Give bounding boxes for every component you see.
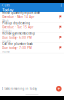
button[interactable]: Add task [56,86,62,92]
button[interactable]: Renew gym membership [0,33,64,43]
staticText: 4 tasks remaining in Today [2,87,37,90]
staticText: Due today · 7:30 PM [2,46,31,50]
staticText: Due today · 6:00 PM [2,36,31,39]
staticText: Pick up dry cleaning [2,21,30,25]
staticText: Home [2,50,10,54]
staticText: Overdue · Mon 14 Apr [2,15,34,19]
staticText: Finish quarterly report draft [2,11,40,15]
button[interactable]: Finish quarterly report draft [0,12,64,22]
staticText: Lists [4,3,9,7]
button[interactable]: Call the plumber back [0,43,64,53]
staticText: Overdue · Tue 15 Apr [2,25,33,29]
staticText: Errands [2,30,11,33]
button[interactable]: Lists [0,3,11,7]
staticText: Call the plumber back [2,42,32,46]
staticText: Health [2,40,11,43]
staticText: Today [2,7,13,12]
staticText: Work [2,19,8,23]
button[interactable]: More options [58,3,64,7]
button[interactable]: Pick up dry cleaning [0,22,64,33]
staticText: Renew gym membership [2,32,35,35]
